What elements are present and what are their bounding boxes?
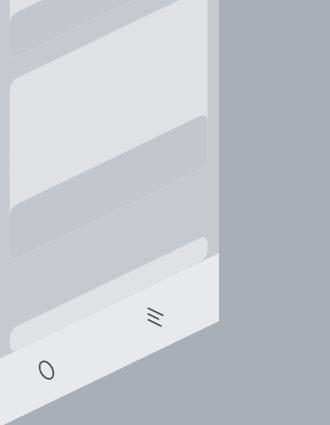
- button[interactable]: Recents: [60, 336, 110, 380]
- button[interactable]: Menu: [166, 286, 216, 330]
- button[interactable]: Home: [114, 310, 164, 354]
- button[interactable]: Close: [8, 360, 58, 404]
